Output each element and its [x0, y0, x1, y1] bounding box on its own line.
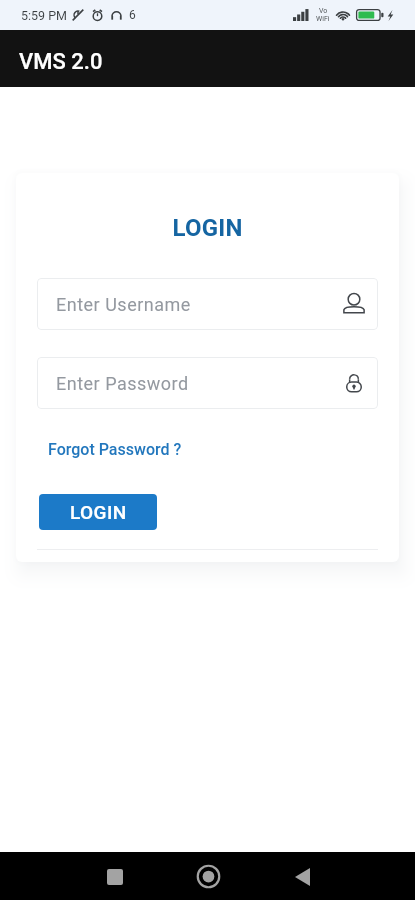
staticText: VMS 2.0	[19, 49, 103, 75]
button[interactable]: Forgot Password ?	[48, 440, 182, 459]
button[interactable]: Back	[279, 853, 326, 900]
button[interactable]: Enter Password	[37, 357, 378, 409]
staticText: Enter Username	[56, 294, 191, 315]
staticText: LOGIN	[16, 214, 399, 242]
staticText: LOGIN	[70, 501, 127, 523]
staticText: Vo	[319, 7, 328, 15]
staticText: 5:59 PM	[21, 8, 68, 23]
staticText: Enter Password	[56, 373, 189, 394]
button[interactable]: Home	[185, 853, 232, 900]
staticText: 6	[129, 8, 136, 22]
button[interactable]: LOGIN	[39, 494, 157, 530]
button[interactable]: Enter Username	[37, 278, 378, 330]
button[interactable]: Recent apps	[91, 853, 138, 900]
staticText: Forgot Password ?	[48, 440, 182, 459]
staticText: WiFi	[316, 15, 330, 23]
